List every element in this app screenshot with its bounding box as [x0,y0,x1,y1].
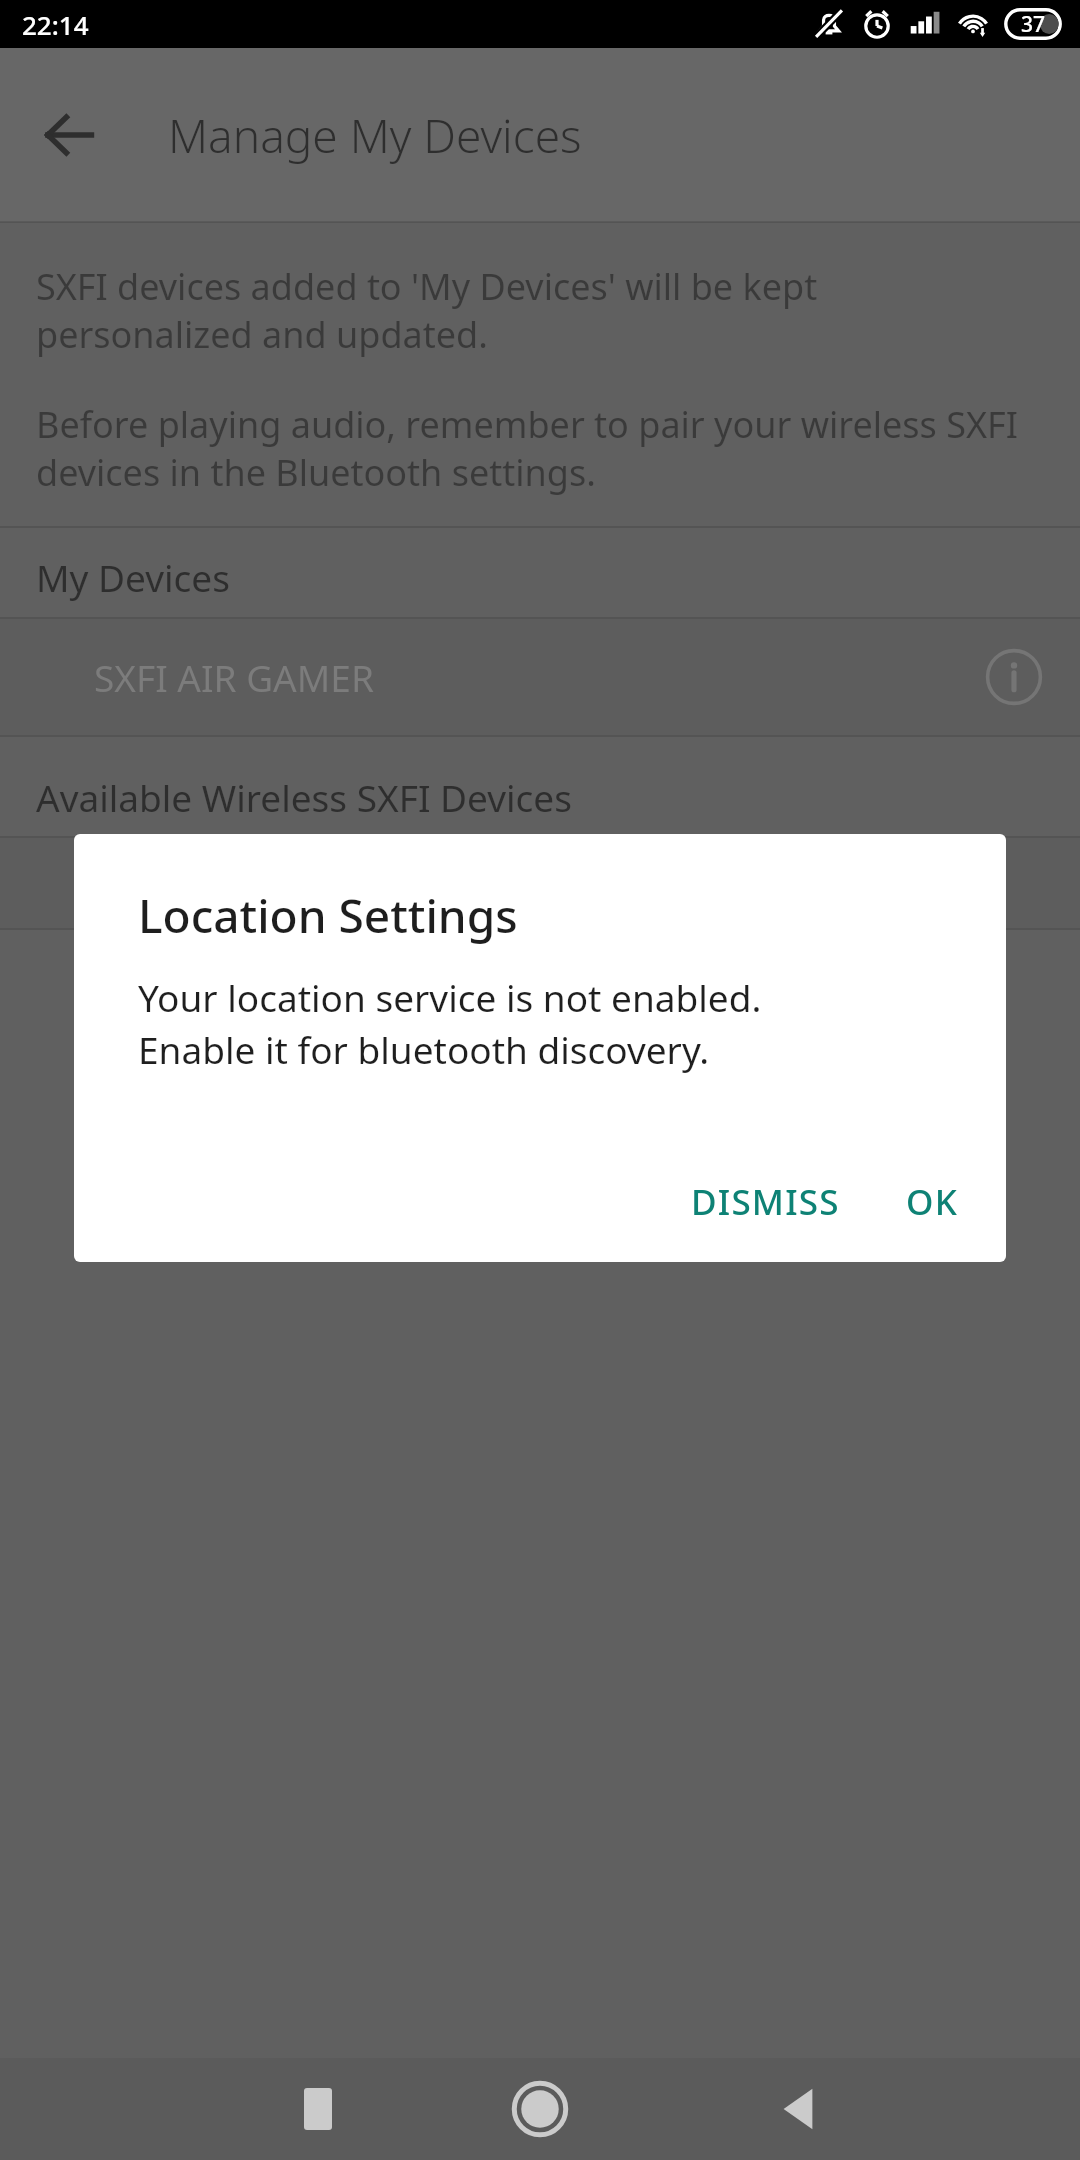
staticText: Your location service is not enabled. En… [138,972,978,1075]
staticText: 37 [1021,10,1046,39]
staticText: DISMISS [691,1178,840,1226]
button[interactable]: Home [501,2070,579,2148]
button[interactable]: OK [884,1158,980,1246]
button[interactable]: Recents [282,2073,354,2145]
button[interactable]: SXFI AIR GAMER [0,619,1080,735]
button[interactable]: DISMISS [669,1158,862,1246]
staticText: 22:14 [22,7,89,42]
staticText: Location Settings [138,884,518,947]
staticText: Before playing audio, remember to pair y… [36,400,1056,496]
staticText: Manage My Devices [168,104,582,167]
staticText: My Devices [36,552,230,602]
staticText: Available Wireless SXFI Devices [36,772,572,822]
staticText: OK [906,1178,958,1226]
button[interactable]: Back [762,2073,834,2145]
button[interactable]: Back [36,102,102,168]
staticText: SXFI devices added to 'My Devices' will … [36,262,1036,358]
staticText: SXFI AIR GAMER [94,652,374,702]
button[interactable]: Device info [974,637,1054,717]
